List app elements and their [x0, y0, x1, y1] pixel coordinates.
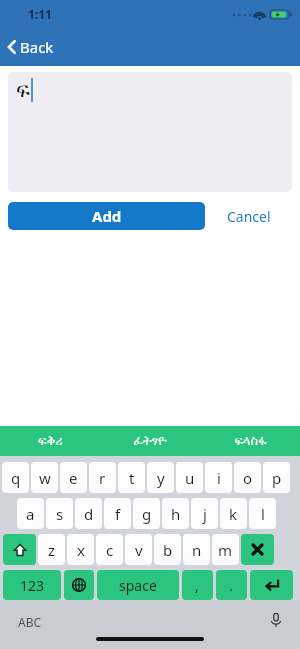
- button[interactable]: Cancel: [205, 202, 292, 230]
- staticText: y: [157, 468, 165, 488]
- staticText: ፍቅሪ: [38, 435, 63, 448]
- staticText: w: [39, 468, 51, 488]
- staticText: Cancel: [227, 207, 271, 226]
- staticText: 123: [20, 576, 45, 595]
- button[interactable]: x: [67, 534, 94, 565]
- button[interactable]: m: [212, 534, 239, 565]
- staticText: b: [163, 540, 173, 560]
- staticText: Add: [92, 206, 122, 226]
- button[interactable]: .: [216, 570, 247, 600]
- button[interactable]: 123: [3, 570, 61, 600]
- button[interactable]: Return: [250, 570, 293, 600]
- button[interactable]: n: [183, 534, 210, 565]
- button[interactable]: d: [75, 498, 102, 529]
- button[interactable]: j: [191, 498, 218, 529]
- staticText: f: [115, 504, 121, 524]
- staticText: Back: [20, 37, 54, 57]
- button[interactable]: c: [96, 534, 123, 565]
- button[interactable]: y: [147, 462, 174, 493]
- button[interactable]: s: [46, 498, 73, 529]
- button[interactable]: Back: [6, 37, 54, 57]
- staticText: n: [192, 540, 202, 560]
- staticText: 1:11: [28, 6, 52, 22]
- staticText: t: [129, 468, 135, 488]
- staticText: l: [261, 504, 265, 524]
- button[interactable]: space: [97, 570, 179, 600]
- button[interactable]: g: [133, 498, 160, 529]
- staticText: x: [77, 540, 85, 560]
- button[interactable]: k: [220, 498, 247, 529]
- staticText: m: [218, 540, 233, 560]
- staticText: s: [56, 504, 64, 524]
- button[interactable]: i: [205, 462, 232, 493]
- staticText: q: [11, 468, 21, 488]
- button[interactable]: ፍላስፋ: [200, 426, 300, 456]
- button[interactable]: l: [249, 498, 276, 529]
- button[interactable]: Switch keyboard: [64, 570, 94, 600]
- button[interactable]: ፈትፃዮ: [100, 426, 200, 456]
- staticText: c: [106, 540, 114, 560]
- staticText: ,: [195, 575, 200, 595]
- staticText: h: [171, 504, 181, 524]
- button[interactable]: ABC: [18, 614, 42, 630]
- button[interactable]: ፍቅሪ: [0, 426, 100, 456]
- staticText: j: [203, 504, 207, 524]
- button[interactable]: ፍ: [8, 72, 292, 192]
- button[interactable]: Add: [8, 202, 205, 230]
- staticText: ፍላስፋ: [234, 435, 267, 448]
- staticText: ፈትፃዮ: [133, 435, 167, 448]
- button[interactable]: Delete: [241, 534, 274, 565]
- button[interactable]: ,: [182, 570, 213, 600]
- staticText: g: [142, 504, 152, 524]
- button[interactable]: t: [118, 462, 145, 493]
- staticText: i: [217, 468, 221, 488]
- button[interactable]: f: [104, 498, 131, 529]
- button[interactable]: e: [60, 462, 87, 493]
- button[interactable]: v: [125, 534, 152, 565]
- staticText: d: [84, 504, 94, 524]
- button[interactable]: z: [38, 534, 65, 565]
- staticText: space: [119, 576, 157, 595]
- staticText: v: [135, 540, 143, 560]
- button[interactable]: a: [17, 498, 44, 529]
- button[interactable]: Dictation: [266, 610, 286, 630]
- button[interactable]: r: [89, 462, 116, 493]
- button[interactable]: o: [234, 462, 261, 493]
- button[interactable]: h: [162, 498, 189, 529]
- staticText: r: [99, 468, 106, 488]
- staticText: u: [185, 468, 195, 488]
- staticText: z: [48, 540, 56, 560]
- staticText: o: [243, 468, 253, 488]
- staticText: e: [69, 468, 78, 488]
- button[interactable]: b: [154, 534, 181, 565]
- button[interactable]: p: [263, 462, 290, 493]
- staticText: a: [26, 504, 35, 524]
- staticText: .: [229, 575, 234, 595]
- staticText: p: [272, 468, 282, 488]
- button[interactable]: q: [2, 462, 29, 493]
- button[interactable]: w: [31, 462, 58, 493]
- button[interactable]: Shift: [3, 534, 36, 565]
- staticText: ፍ: [16, 80, 30, 101]
- staticText: k: [229, 504, 238, 524]
- button[interactable]: u: [176, 462, 203, 493]
